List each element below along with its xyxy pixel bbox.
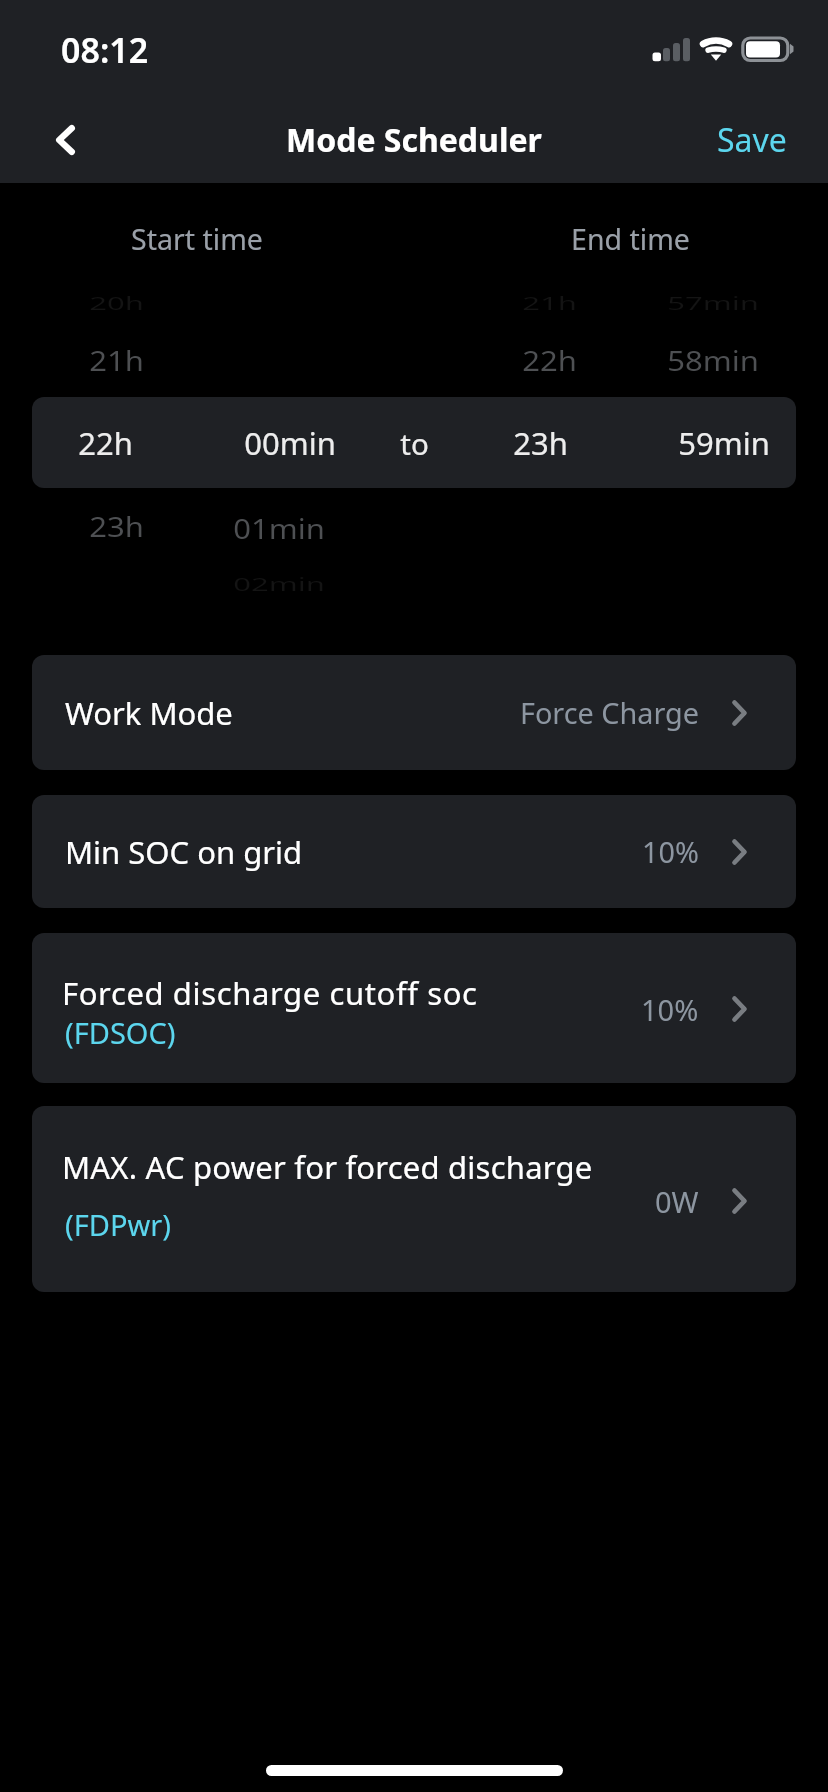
- button[interactable]: 02min: [169, 566, 389, 602]
- staticText: 20h: [89, 290, 144, 316]
- staticText: MAX. AC power for forced discharge: [62, 1146, 593, 1188]
- staticText: Force Charge: [520, 693, 699, 732]
- staticText: 10%: [641, 990, 699, 1029]
- staticText: 22h: [78, 422, 133, 464]
- staticText: Mode Scheduler: [286, 118, 542, 162]
- staticText: 02min: [233, 571, 325, 597]
- staticText: 21h: [89, 343, 144, 379]
- button[interactable]: Back: [21, 96, 109, 183]
- staticText: 23h: [513, 422, 568, 464]
- staticText: Save: [717, 118, 787, 162]
- button[interactable]: Work Mode: [32, 655, 796, 770]
- staticText: (FDSOC): [65, 1013, 176, 1052]
- button[interactable]: 59min: [614, 413, 828, 473]
- staticText: End time: [571, 220, 690, 259]
- button[interactable]: 00min: [180, 413, 400, 473]
- staticText: 58min: [667, 343, 759, 379]
- button[interactable]: MAX. AC power for forced discharge: [32, 1106, 796, 1292]
- button[interactable]: 01min: [169, 503, 389, 555]
- button[interactable]: 23h: [6, 501, 226, 553]
- button[interactable]: 22h: [439, 335, 659, 387]
- button[interactable]: Min SOC on grid: [32, 795, 796, 908]
- staticText: Start time: [131, 220, 263, 259]
- staticText: 21h: [522, 290, 577, 316]
- staticText: 59min: [678, 422, 770, 464]
- staticText: Forced discharge cutoff soc: [62, 972, 478, 1014]
- button[interactable]: Forced discharge cutoff soc: [32, 933, 796, 1083]
- staticText: Work Mode: [65, 692, 233, 734]
- staticText: Min SOC on grid: [65, 831, 303, 873]
- staticText: 00min: [244, 422, 336, 464]
- button[interactable]: 21h: [6, 335, 226, 387]
- staticText: 08:12: [61, 27, 149, 73]
- button[interactable]: 57min: [603, 285, 823, 321]
- staticText: 10%: [642, 832, 699, 871]
- staticText: 22h: [522, 343, 577, 379]
- button[interactable]: 58min: [603, 335, 823, 387]
- staticText: 01min: [233, 511, 325, 547]
- staticText: to: [400, 423, 429, 463]
- button[interactable]: 23h: [430, 413, 650, 473]
- staticText: 57min: [667, 290, 759, 316]
- staticText: 0W: [655, 1182, 699, 1221]
- staticText: (FDPwr): [65, 1205, 171, 1244]
- button[interactable]: Save: [692, 104, 812, 176]
- staticText: 23h: [89, 509, 144, 545]
- button[interactable]: 22h: [0, 413, 215, 473]
